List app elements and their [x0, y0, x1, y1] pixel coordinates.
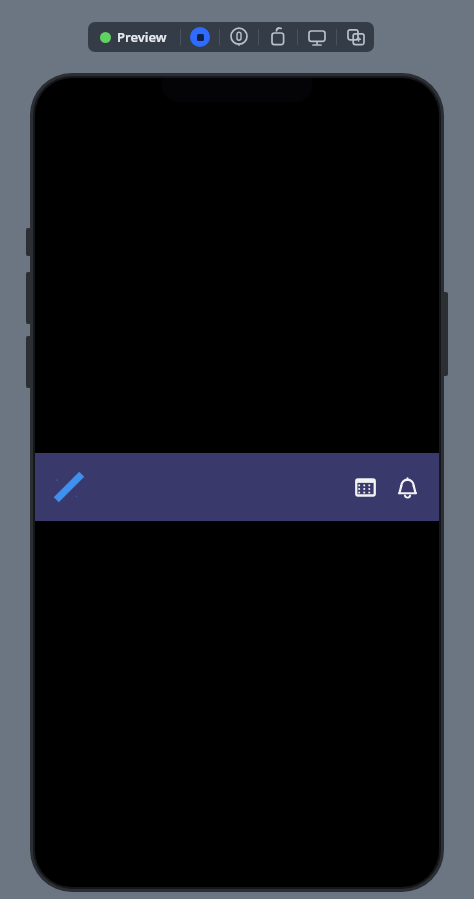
button[interactable]: Calendar [345, 467, 385, 507]
button[interactable]: Notifications [387, 467, 427, 507]
button[interactable]: Duplicate [337, 22, 374, 52]
button[interactable]: Rotate [259, 22, 297, 52]
button[interactable]: Preview [88, 22, 180, 52]
staticText: Preview [117, 28, 167, 46]
button[interactable]: Display [298, 22, 336, 52]
button[interactable]: Edit [47, 465, 91, 509]
button[interactable]: Stop preview [181, 22, 219, 52]
button[interactable]: Inspect [220, 22, 258, 52]
